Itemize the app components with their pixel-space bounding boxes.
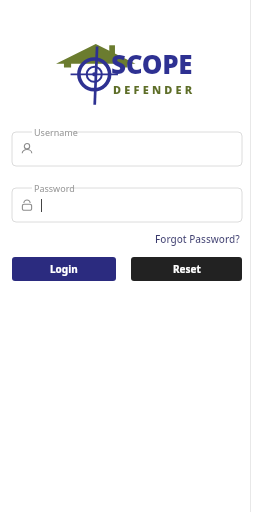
button[interactable]: Reset xyxy=(131,257,242,281)
staticText: SCOPE xyxy=(111,46,193,81)
staticText: DEFENDER xyxy=(113,82,196,97)
button[interactable]: Forgot Password? xyxy=(153,230,242,248)
staticText: Forgot Password? xyxy=(155,232,240,246)
staticText: Login xyxy=(50,262,78,276)
staticText: Reset xyxy=(173,262,201,276)
staticText: Username xyxy=(34,126,78,138)
staticText: Password xyxy=(34,182,75,194)
button[interactable]: Login xyxy=(12,257,116,281)
